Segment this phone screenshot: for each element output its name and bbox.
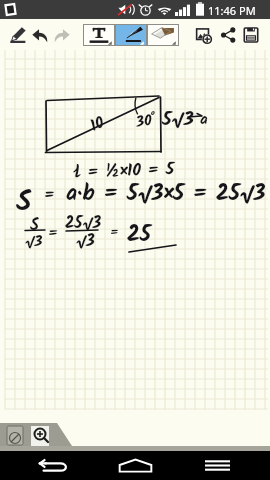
staticText: ℓ = ½×10 = 5 <box>73 156 175 187</box>
staticText: a·b = 5√3×5 = 25√3 <box>66 177 266 212</box>
button[interactable]: Text tool <box>83 24 115 46</box>
staticText: = <box>44 183 55 209</box>
button[interactable]: Share <box>217 24 239 46</box>
staticText: 11:46 PM <box>208 3 256 18</box>
button[interactable]: Pen tool <box>115 24 147 46</box>
staticText: = <box>110 222 119 243</box>
button[interactable]: Palm rejection <box>7 426 23 445</box>
button[interactable]: Recent apps <box>188 451 246 480</box>
staticText: 5√3 <box>162 105 194 135</box>
staticText: ° <box>150 107 155 125</box>
button[interactable]: Back <box>24 451 82 480</box>
button[interactable]: Highlighter <box>7 24 29 46</box>
staticText: 25√3 <box>65 211 102 237</box>
button[interactable]: Home <box>106 451 164 480</box>
staticText: √3 <box>25 230 43 254</box>
staticText: 25 <box>127 218 151 253</box>
button[interactable]: Eraser tool <box>147 24 179 46</box>
staticText: 10 <box>86 110 110 140</box>
button[interactable]: Undo <box>29 24 51 46</box>
button[interactable]: Add image <box>193 24 215 46</box>
button[interactable]: Zoom in <box>31 426 49 446</box>
button[interactable]: Save <box>240 24 262 46</box>
staticText: a <box>200 108 208 132</box>
staticText: S <box>16 180 32 225</box>
staticText: S <box>30 213 39 239</box>
button[interactable]: Redo <box>51 24 73 46</box>
staticText: = <box>48 222 59 246</box>
staticText: √3 <box>76 229 95 255</box>
staticText: 30 <box>134 109 154 135</box>
